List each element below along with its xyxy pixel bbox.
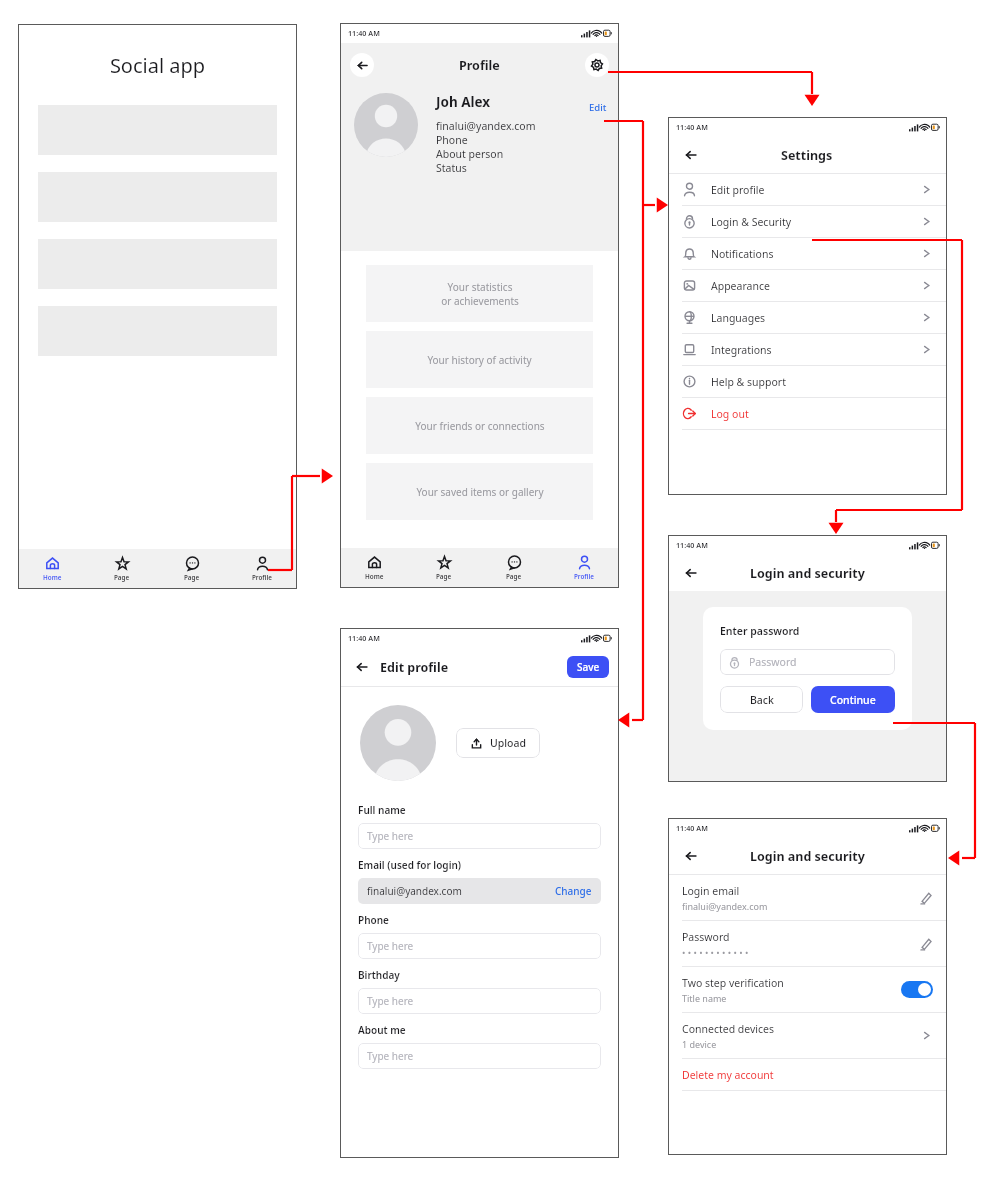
button[interactable]: Integrations	[668, 334, 947, 366]
staticText: 11:40 AM	[348, 28, 380, 38]
button[interactable]: Login email	[668, 875, 947, 921]
staticText: Type here	[367, 939, 414, 953]
staticText: finalui@yandex.com	[367, 884, 462, 898]
staticText: Delete my account	[682, 1068, 774, 1082]
staticText: Edit profile	[380, 659, 449, 676]
button[interactable]: Page	[87, 549, 157, 589]
button[interactable]: Home	[340, 548, 409, 588]
button[interactable]: Log out	[668, 398, 947, 430]
staticText: Appearance	[711, 279, 770, 293]
staticText: Edit	[589, 101, 607, 114]
button[interactable]: Your statistics or achievements	[366, 265, 593, 322]
staticText: • • • • • • • • • • • •	[682, 946, 749, 958]
staticText: Log out	[711, 407, 749, 421]
staticText: Home	[43, 573, 62, 582]
button[interactable]: Your saved items or gallery	[366, 463, 593, 520]
button[interactable]: finalui@yandex.com	[358, 878, 601, 904]
staticText: Page	[506, 572, 522, 581]
button[interactable]: Continue	[811, 686, 895, 713]
button[interactable]: Page	[409, 548, 479, 588]
staticText: Type here	[367, 829, 414, 843]
staticText: Status	[436, 161, 467, 175]
button[interactable]: Type here	[358, 823, 601, 849]
staticText: Save	[577, 660, 600, 674]
staticText: Social app	[18, 52, 297, 79]
staticText: Back	[750, 693, 774, 707]
button[interactable]: Page	[157, 549, 227, 589]
staticText: Joh Alex	[436, 93, 491, 111]
staticText: Email (used for login)	[358, 858, 462, 872]
staticText: Home	[365, 572, 384, 581]
button[interactable]: Back	[354, 659, 370, 675]
staticText: Languages	[711, 311, 766, 325]
staticText: Login and security	[750, 848, 865, 865]
button[interactable]: Login & Security	[668, 206, 947, 238]
button[interactable]: Type here	[358, 988, 601, 1014]
staticText: Profile	[252, 573, 272, 582]
button[interactable]: Profile	[549, 548, 619, 588]
button[interactable]: Two step verification	[668, 967, 947, 1013]
button[interactable]: Notifications	[668, 238, 947, 270]
staticText: Enter password	[720, 624, 800, 638]
staticText: Integrations	[711, 343, 772, 357]
staticText: finalui@yandex.com	[436, 119, 536, 133]
button[interactable]: Settings	[585, 53, 609, 77]
staticText: Type here	[367, 1049, 414, 1063]
staticText: 11:40 AM	[348, 633, 380, 643]
button[interactable]: Appearance	[668, 270, 947, 302]
button[interactable]: Type here	[358, 933, 601, 959]
staticText: About me	[358, 1023, 406, 1037]
button[interactable]: Profile	[227, 549, 297, 589]
button[interactable]: Home	[18, 549, 87, 589]
staticText: Connected devices	[682, 1022, 775, 1036]
staticText: 11:40 AM	[676, 823, 708, 833]
staticText: 11:40 AM	[676, 540, 708, 550]
button[interactable]: Type here	[358, 1043, 601, 1069]
staticText: Type here	[367, 994, 414, 1008]
staticText: Login and security	[750, 565, 865, 582]
staticText: Help & support	[711, 375, 786, 389]
staticText: Full name	[358, 803, 406, 817]
button[interactable]: Back	[350, 53, 374, 77]
button[interactable]: Save	[567, 656, 609, 678]
button[interactable]: Back	[682, 146, 700, 164]
staticText: Password	[749, 655, 797, 669]
button[interactable]: Back	[682, 564, 700, 582]
staticText: Continue	[830, 693, 876, 707]
button[interactable]: Edit	[589, 101, 607, 114]
button[interactable]: Your history of activity	[366, 331, 593, 388]
staticText: Your saved items or gallery	[416, 485, 544, 499]
staticText: Title name	[682, 992, 727, 1004]
staticText: Settings	[781, 147, 833, 164]
staticText: Login email	[682, 884, 740, 898]
staticText: About person	[436, 147, 504, 161]
staticText: Edit profile	[711, 183, 765, 197]
button[interactable]: Connected devices	[668, 1013, 947, 1059]
button[interactable]: Languages	[668, 302, 947, 334]
staticText: Phone	[358, 913, 389, 927]
button[interactable]: Password	[668, 921, 947, 967]
button[interactable]: Back	[682, 847, 700, 865]
button[interactable]: Delete my account	[668, 1059, 947, 1091]
button[interactable]: Page	[479, 548, 549, 588]
staticText: finalui@yandex.com	[682, 900, 768, 912]
button[interactable]: Edit profile	[668, 174, 947, 206]
staticText: Change	[555, 884, 592, 898]
staticText: Two step verification	[682, 976, 784, 990]
staticText: Login & Security	[711, 215, 792, 229]
button[interactable]: Upload	[456, 728, 540, 758]
button[interactable]: Back	[720, 686, 803, 713]
staticText: Birthday	[358, 968, 400, 982]
staticText: Upload	[490, 736, 527, 750]
staticText: Phone	[436, 133, 468, 147]
button[interactable]: Password	[720, 649, 895, 675]
button[interactable]	[901, 981, 933, 998]
button[interactable]: Your friends or connections	[366, 397, 593, 454]
staticText: Page	[436, 572, 452, 581]
staticText: Your statistics or achievements	[441, 280, 519, 308]
button[interactable]: Help & support	[668, 366, 947, 398]
